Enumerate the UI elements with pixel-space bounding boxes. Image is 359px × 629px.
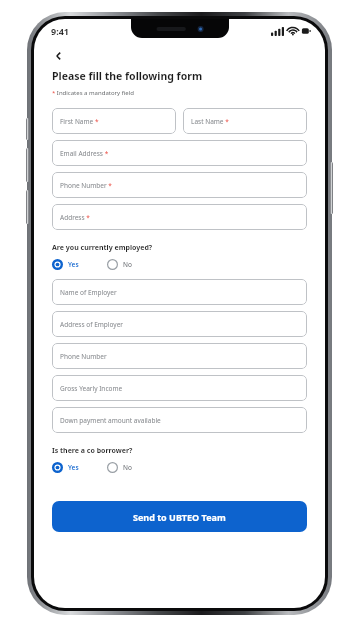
staticText: No xyxy=(123,463,132,472)
button[interactable]: Send to UBTEO Team xyxy=(52,501,307,532)
staticText: No xyxy=(123,260,132,269)
staticText: Address of Employer xyxy=(60,320,123,329)
staticText: Email Address * xyxy=(60,149,109,158)
button[interactable]: Address of Employer xyxy=(52,311,307,337)
staticText: Is there a co borrower? xyxy=(52,446,133,456)
staticText: Address * xyxy=(60,213,90,222)
button[interactable]: Address * xyxy=(52,204,307,230)
button[interactable]: Yes xyxy=(52,460,79,475)
staticText: Phone Number * xyxy=(60,181,112,190)
staticText: Gross Yearly Income xyxy=(60,384,123,393)
button[interactable]: Name of Employer xyxy=(52,279,307,305)
staticText: 9:41 xyxy=(51,25,69,37)
button[interactable]: Last Name * xyxy=(183,108,307,134)
staticText: Yes xyxy=(68,463,79,472)
staticText: Yes xyxy=(68,260,79,269)
button[interactable]: First Name * xyxy=(52,108,176,134)
staticText: Last Name * xyxy=(191,117,229,126)
button[interactable]: Yes xyxy=(52,257,79,272)
button[interactable]: Phone Number xyxy=(52,343,307,369)
button[interactable]: Gross Yearly Income xyxy=(52,375,307,401)
button[interactable]: No xyxy=(107,257,132,272)
button[interactable]: Back xyxy=(46,43,72,69)
staticText: Phone Number xyxy=(60,352,107,361)
staticText: Are you currently employed? xyxy=(52,243,153,253)
button[interactable]: Phone Number * xyxy=(52,172,307,198)
staticText: First Name * xyxy=(60,117,99,126)
button[interactable]: No xyxy=(107,460,132,475)
staticText: Send to UBTEO Team xyxy=(133,511,226,523)
staticText: Name of Employer xyxy=(60,288,117,297)
button[interactable]: Down payment amount available xyxy=(52,407,307,433)
button[interactable]: Email Address * xyxy=(52,140,307,166)
staticText: Down payment amount available xyxy=(60,416,161,425)
staticText: * Indicates a mandatory field xyxy=(52,89,134,97)
staticText: Please fill the following form xyxy=(52,69,203,83)
